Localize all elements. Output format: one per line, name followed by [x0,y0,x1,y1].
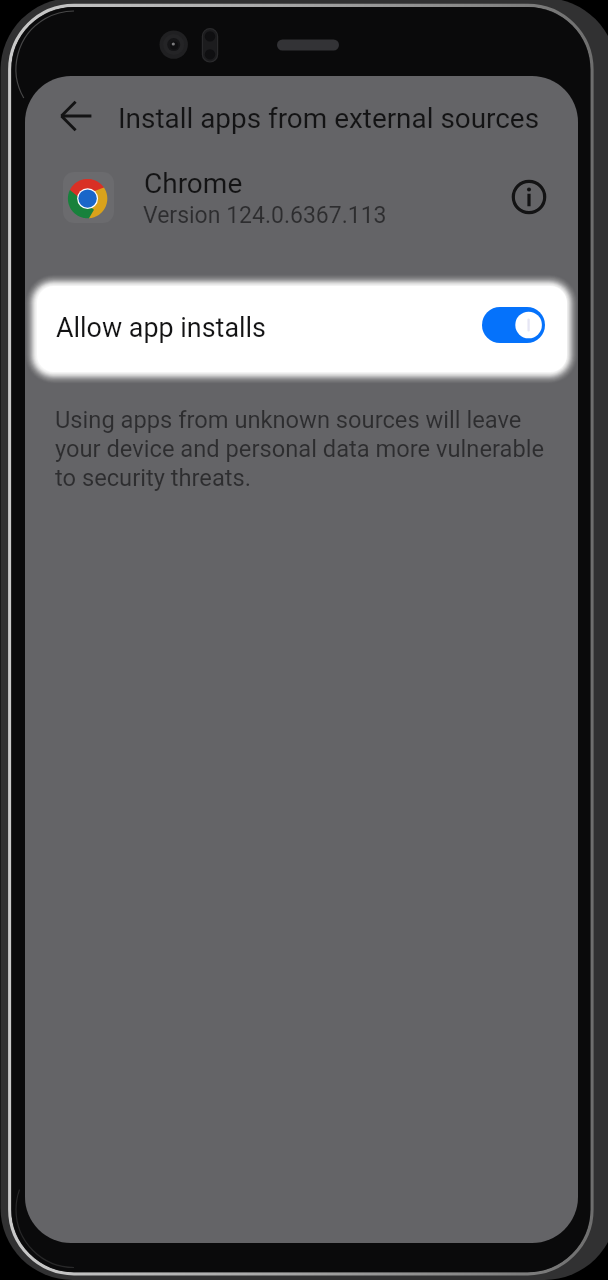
staticText: Chrome [144,167,243,200]
staticText: Allow app installs [56,312,266,344]
button[interactable]: App info [505,173,553,221]
staticText: Install apps from external sources [118,102,540,135]
staticText: Version 124.0.6367.113 [143,202,387,229]
staticText: Using apps from unknown sources will lea… [55,406,555,492]
button[interactable]: Allow app installs toggle [482,307,545,343]
button[interactable]: Allow app installs [37,286,567,372]
button[interactable]: Navigate back [37,92,85,140]
